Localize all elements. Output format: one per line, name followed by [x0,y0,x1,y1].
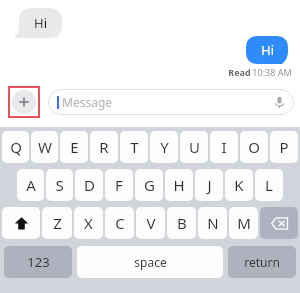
staticText: D [84,175,95,195]
staticText: Hi [34,14,47,32]
staticText: I [221,137,227,157]
button[interactable]: H [165,169,193,201]
button[interactable]: Message [48,89,294,115]
staticText: R [99,137,109,157]
button[interactable]: D [75,169,103,201]
staticText: 123 [27,253,50,271]
button[interactable]: 123 [4,246,72,278]
button[interactable]: Backspace [260,207,298,239]
staticText: F [115,175,123,195]
staticText: O [248,137,260,157]
staticText: H [173,175,185,195]
button[interactable]: Y [150,131,178,163]
staticText: L [265,175,273,195]
button[interactable]: U [180,131,208,163]
button[interactable]: S [46,169,73,201]
button[interactable]: space [77,246,223,278]
staticText: M [237,213,251,233]
staticText: V [146,213,156,233]
staticText: G [144,175,155,195]
staticText: return [244,254,280,270]
button[interactable]: Voice input [268,91,290,113]
button[interactable]: E [60,131,88,163]
staticText: Q [10,137,22,157]
button[interactable]: Z [42,207,72,239]
button[interactable]: W [31,131,58,163]
staticText: Hi [261,41,274,59]
staticText: W [38,137,52,157]
button[interactable]: B [167,207,196,239]
button[interactable]: Shift [2,207,40,239]
staticText: N [207,213,219,233]
staticText: U [189,137,200,157]
button[interactable]: V [136,207,165,239]
staticText: Y [160,137,169,157]
button[interactable]: J [195,169,223,201]
staticText: E [70,137,79,157]
button[interactable]: K [225,169,253,201]
button[interactable]: G [135,169,163,201]
button[interactable]: O [240,131,268,163]
button[interactable]: T [120,131,148,163]
staticText: 10:38 AM [252,66,292,78]
button[interactable]: return [228,246,296,278]
staticText: J [207,175,212,195]
staticText: P [279,137,289,157]
button[interactable]: Q [2,131,29,163]
button[interactable]: R [90,131,118,163]
staticText: C [115,213,125,233]
button[interactable]: A [17,169,44,201]
button[interactable]: F [105,169,133,201]
staticText: T [130,137,139,157]
button[interactable]: Add attachment [8,86,40,118]
button[interactable]: L [255,169,283,201]
button[interactable]: M [229,207,258,239]
button[interactable]: P [270,131,298,163]
button[interactable]: I [210,131,238,163]
staticText: Read [227,66,252,78]
staticText: A [26,175,36,195]
staticText: S [55,175,64,195]
staticText: Z [53,213,62,233]
staticText: space [134,254,167,270]
staticText: Message [62,94,113,110]
button[interactable]: X [74,207,103,239]
staticText: B [177,213,187,233]
staticText: X [84,213,93,233]
button[interactable]: C [105,207,134,239]
button[interactable]: N [198,207,227,239]
staticText: K [234,175,244,195]
